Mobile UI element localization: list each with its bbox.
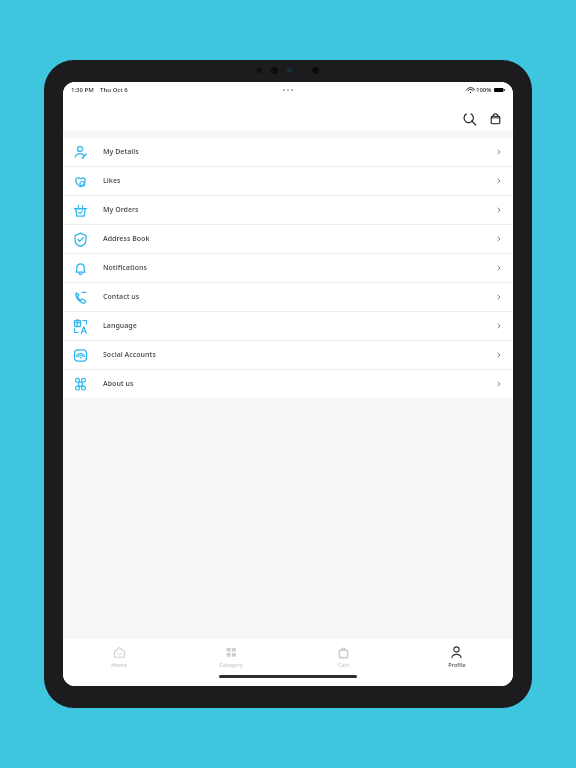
button[interactable]: Search xyxy=(461,110,478,127)
staticText: Contact us xyxy=(103,292,140,302)
staticText: 100% xyxy=(476,86,492,94)
button[interactable]: Language xyxy=(63,312,513,340)
button[interactable]: Cart xyxy=(287,639,400,675)
staticText: Thu Oct 6 xyxy=(100,86,128,94)
staticText: 1:30 PM xyxy=(71,86,94,94)
button[interactable]: About us xyxy=(63,370,513,398)
button[interactable]: Cart xyxy=(487,110,504,127)
staticText: Cart xyxy=(338,661,349,668)
staticText: Notifications xyxy=(103,263,147,273)
staticText: Profile xyxy=(448,661,466,668)
button[interactable]: Notifications xyxy=(63,254,513,282)
staticText: Home xyxy=(111,661,127,668)
button[interactable]: Likes xyxy=(63,167,513,195)
button[interactable]: Home xyxy=(63,639,175,675)
button[interactable]: My Orders xyxy=(63,196,513,224)
button[interactable]: Profile xyxy=(400,639,513,675)
staticText: Social Accounts xyxy=(103,350,156,360)
button[interactable]: Social Accounts xyxy=(63,341,513,369)
staticText: Category xyxy=(219,661,243,668)
staticText: Address Book xyxy=(103,234,150,244)
staticText: Language xyxy=(103,321,137,331)
button[interactable]: My Details xyxy=(63,138,513,166)
button[interactable]: Address Book xyxy=(63,225,513,253)
button[interactable]: Category xyxy=(175,639,287,675)
staticText: My Details xyxy=(103,147,139,157)
staticText: Likes xyxy=(103,176,121,186)
button[interactable]: Contact us xyxy=(63,283,513,311)
staticText: My Orders xyxy=(103,205,139,215)
staticText: About us xyxy=(103,379,134,389)
